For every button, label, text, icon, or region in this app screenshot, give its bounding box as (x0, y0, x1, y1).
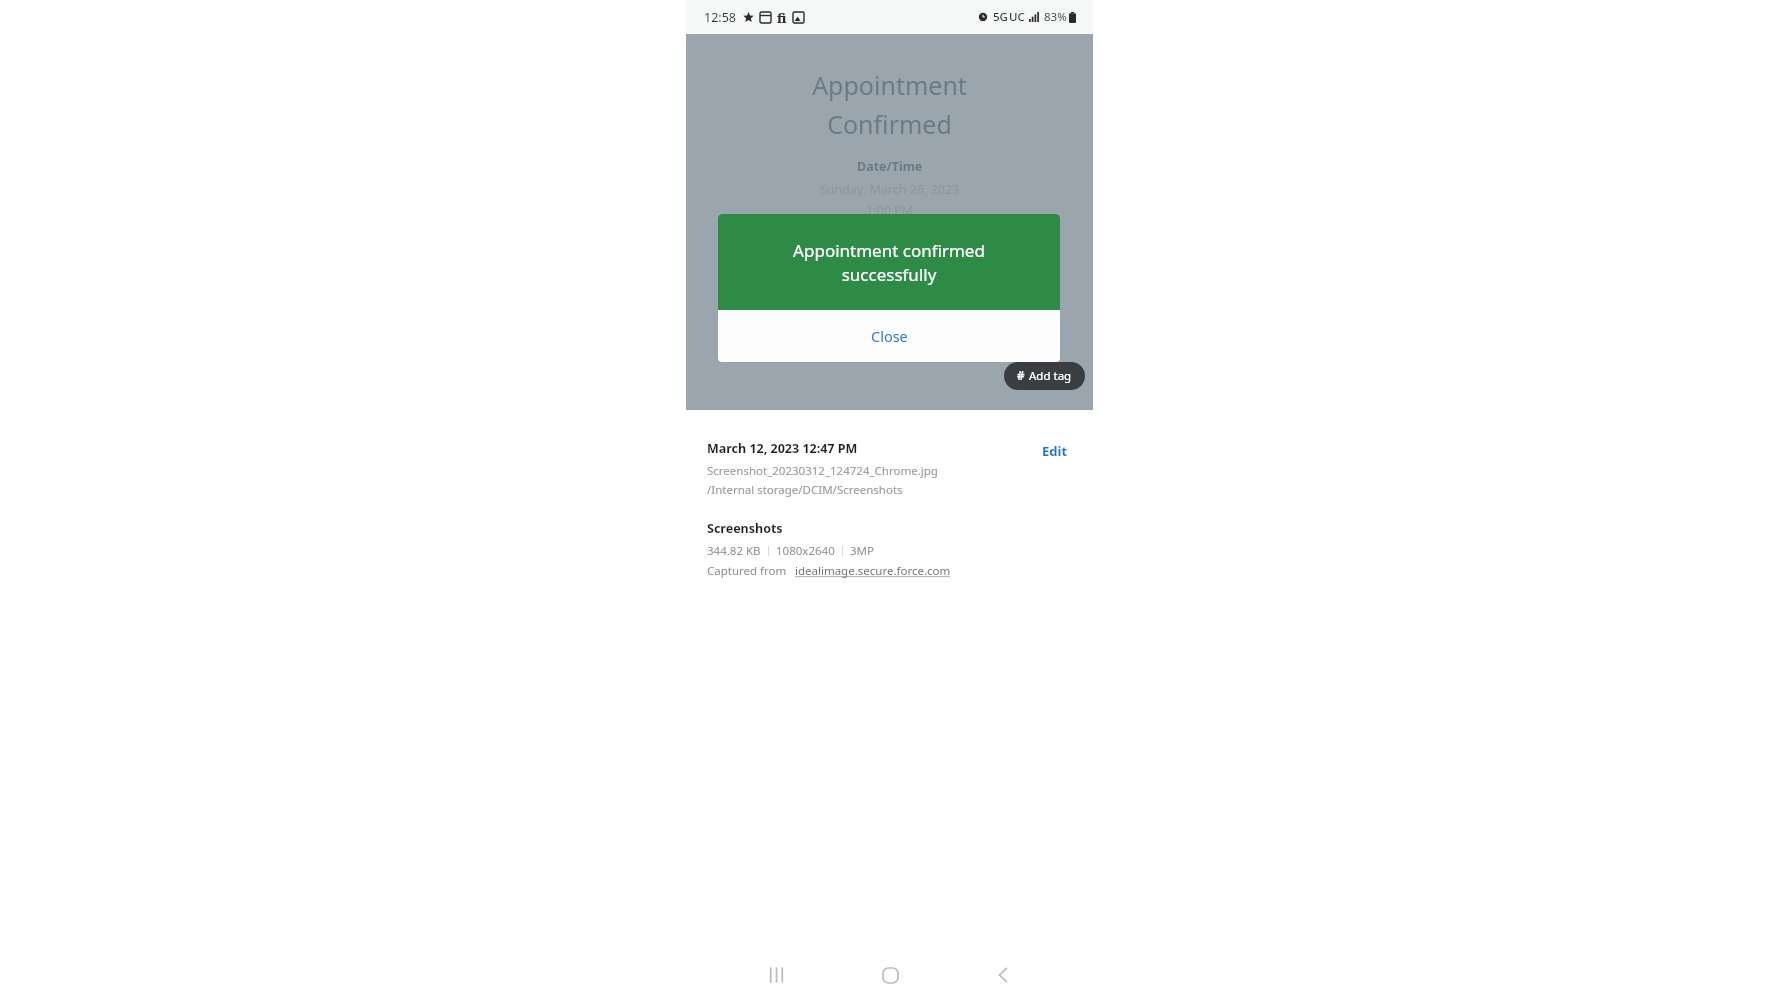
staticText: fi (777, 10, 787, 26)
staticText: March 12, 2023 12:47 PM (707, 440, 858, 457)
button[interactable]: Close (718, 310, 1060, 362)
staticText: Date/Time (857, 158, 923, 175)
staticText: /Internal storage/DCIM/Screenshots (707, 482, 903, 498)
button[interactable]: Edit (1038, 440, 1072, 462)
button[interactable]: Back (980, 952, 1026, 998)
staticText: Screenshot_20230312_124724_Chrome.jpg (707, 463, 938, 479)
staticText: Screenshots (707, 520, 783, 537)
staticText: 344.82 KB (707, 543, 761, 559)
staticText: Captured from (707, 563, 787, 579)
button[interactable]: Home (867, 952, 913, 998)
staticText: Sunday, March 26, 2023 (820, 181, 960, 198)
staticText: 83% (1044, 9, 1067, 25)
staticText: 3MP (850, 543, 874, 559)
staticText: 5G (993, 9, 1008, 25)
staticText: Appointment (812, 68, 967, 102)
staticText: Add tag (1029, 368, 1072, 384)
staticText: 12:58 (704, 9, 736, 26)
button[interactable]: # (1004, 362, 1085, 390)
staticText: idealimage.secure.force.com (795, 563, 951, 579)
staticText: Close (871, 326, 908, 346)
staticText: Hair Removal (850, 328, 929, 345)
staticText: 1080x2640 (776, 543, 835, 559)
staticText: Edit (1042, 442, 1068, 460)
staticText: Confirmed (827, 107, 952, 141)
staticText: Appointment confirmed successfully (793, 239, 985, 286)
button[interactable]: idealimage.secure.force.com (795, 563, 951, 579)
staticText: # (1017, 368, 1025, 384)
button[interactable]: Recent apps (753, 952, 799, 998)
staticText: UC (1009, 9, 1025, 25)
staticText: 1:00 PM (866, 202, 913, 219)
